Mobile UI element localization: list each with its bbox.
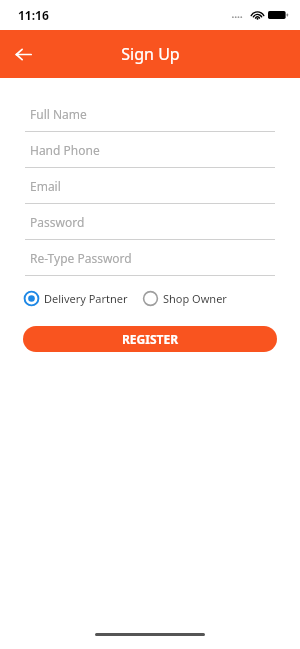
button[interactable]: Shop Owner [142, 287, 227, 309]
staticText: Full Name [30, 106, 87, 122]
button[interactable]: Email [25, 168, 275, 204]
button[interactable]: Password [25, 204, 275, 240]
staticText: REGISTER [122, 331, 179, 347]
staticText: Delivery Partner [44, 291, 128, 306]
staticText: Shop Owner [163, 291, 227, 306]
staticText: Sign Up [121, 43, 180, 65]
staticText: Password [30, 214, 85, 230]
button[interactable]: Delivery Partner [23, 287, 128, 309]
staticText: Hand Phone [30, 142, 100, 158]
button[interactable]: Re-Type Password [25, 240, 275, 276]
staticText: Email [30, 178, 61, 194]
staticText: Re-Type Password [30, 250, 132, 266]
button[interactable]: REGISTER [23, 326, 277, 352]
staticText: 11:16 [18, 7, 49, 23]
button[interactable]: Full Name [25, 96, 275, 132]
button[interactable]: Hand Phone [25, 132, 275, 168]
button[interactable]: Back [8, 39, 38, 69]
